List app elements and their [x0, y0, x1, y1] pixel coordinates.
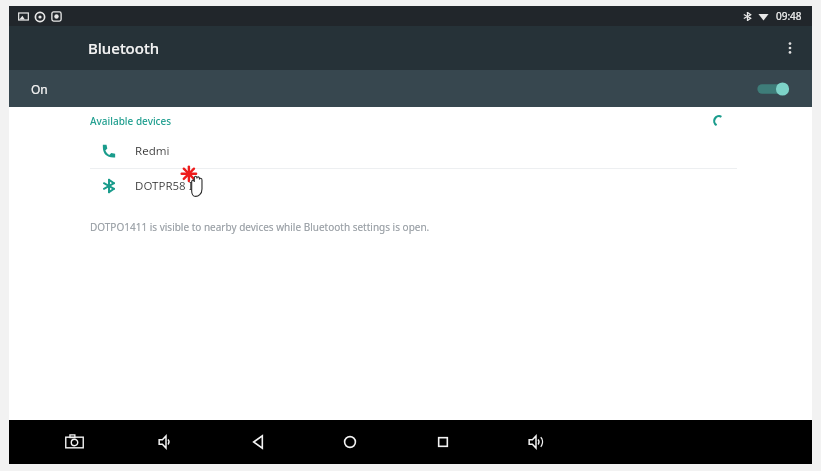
button[interactable]: Recents — [426, 425, 460, 459]
button[interactable]: Back — [241, 425, 275, 459]
button[interactable]: Home — [333, 425, 367, 459]
staticText: Redmi — [135, 143, 170, 159]
staticText: On — [31, 81, 48, 97]
button[interactable]: Volume up — [519, 425, 553, 459]
staticText: 09:48 — [776, 9, 802, 23]
button[interactable]: Bluetooth toggle — [756, 78, 790, 100]
button[interactable]: DOTPR58 I — [9, 169, 812, 203]
staticText: Available devices — [90, 114, 172, 128]
staticText: Bluetooth — [88, 38, 160, 58]
button[interactable]: Volume down — [149, 425, 183, 459]
staticText: DOTPR58 I — [135, 178, 193, 194]
button[interactable]: On — [9, 70, 812, 107]
staticText: DOTPO1411 is visible to nearby devices w… — [90, 220, 430, 234]
button[interactable]: Redmi — [9, 134, 812, 168]
button[interactable]: Screenshot — [57, 425, 91, 459]
button[interactable]: More options — [772, 30, 808, 66]
